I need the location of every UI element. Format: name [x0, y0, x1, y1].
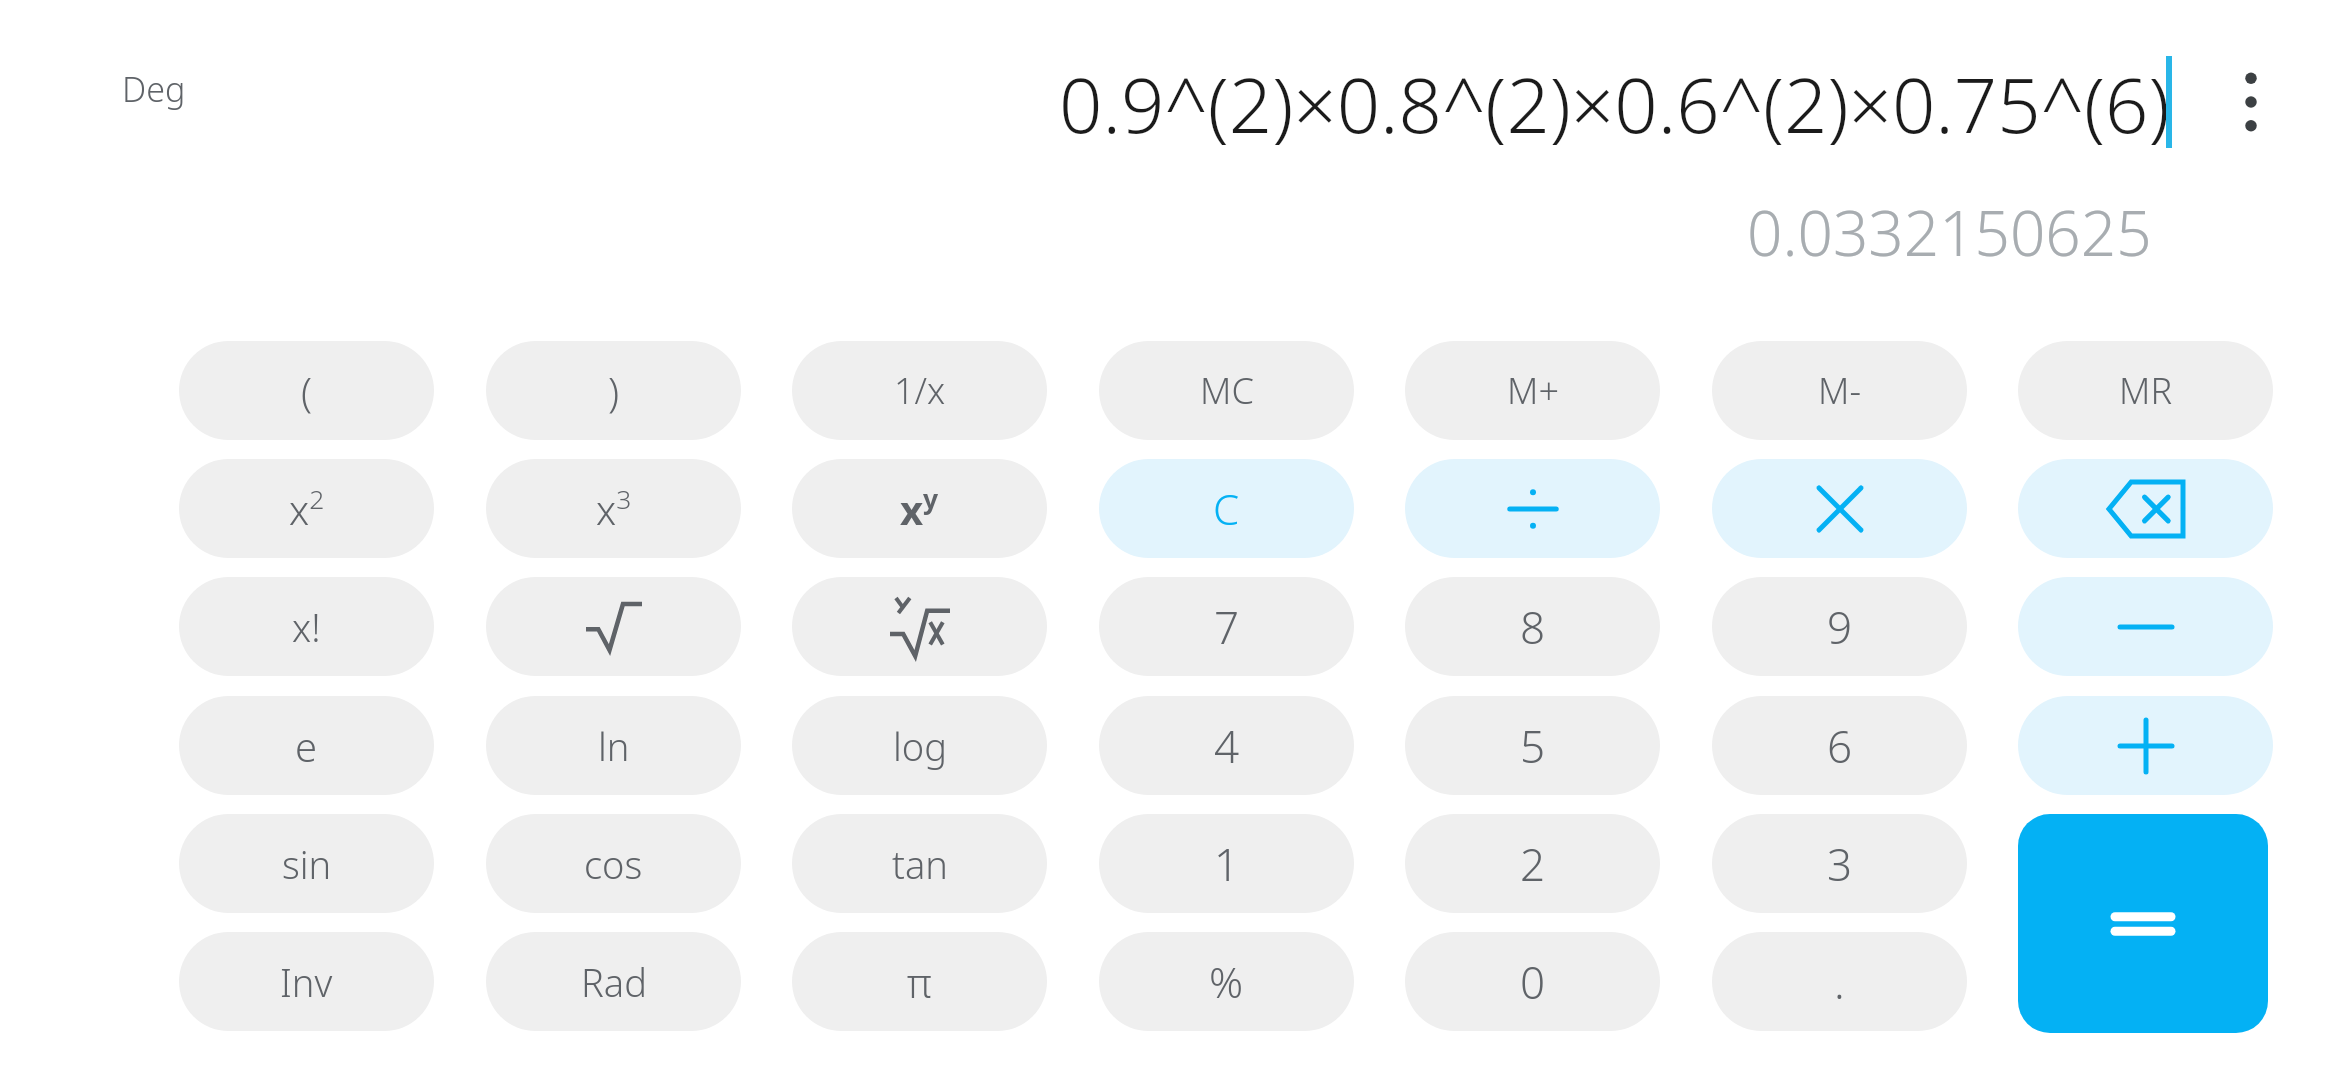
staticText: M+ — [1507, 366, 1559, 415]
button[interactable]: Rad — [486, 932, 741, 1031]
button[interactable]: ( — [179, 341, 434, 440]
staticText: 1 — [1214, 834, 1240, 894]
button[interactable]: Multiply — [1712, 459, 1967, 558]
staticText: x3 — [596, 481, 632, 536]
button[interactable]: y-th root of x — [792, 577, 1047, 676]
staticText: 6 — [1827, 716, 1853, 776]
button[interactable]: sin — [179, 814, 434, 913]
staticText: . — [1834, 952, 1845, 1012]
staticText: cos — [584, 838, 643, 890]
button[interactable]: 1/x — [792, 341, 1047, 440]
button[interactable]: ln — [486, 696, 741, 795]
button[interactable]: x3 — [486, 459, 741, 558]
button[interactable]: Minus — [2018, 577, 2273, 676]
staticText: e — [295, 719, 318, 773]
button[interactable]: xy — [792, 459, 1047, 558]
button[interactable]: 7 — [1099, 577, 1354, 676]
button[interactable]: 2 — [1405, 814, 1660, 913]
button[interactable]: 5 — [1405, 696, 1660, 795]
staticText: 4 — [1214, 716, 1240, 776]
button[interactable]: ) — [486, 341, 741, 440]
staticText: 0.9^(2)×0.8^(2)×0.6^(2)×0.75^(6) — [1059, 52, 2170, 152]
staticText: log — [893, 720, 947, 772]
button[interactable]: C — [1099, 459, 1354, 558]
staticText: 9 — [1827, 597, 1853, 657]
staticText: MR — [2119, 366, 2172, 415]
staticText: 0 — [1520, 952, 1546, 1012]
staticText: x2 — [289, 481, 325, 536]
button[interactable]: Equals — [2018, 814, 2268, 1033]
button[interactable]: Inv — [179, 932, 434, 1031]
staticText: 7 — [1214, 597, 1240, 657]
staticText: 8 — [1520, 597, 1546, 657]
staticText: 0.0332150625 — [1747, 190, 2152, 270]
button[interactable]: Deg — [122, 66, 186, 112]
staticText: 1/x — [894, 366, 946, 415]
staticText: ( — [301, 364, 313, 418]
button[interactable]: MR — [2018, 341, 2273, 440]
button[interactable]: Plus — [2018, 696, 2273, 795]
button[interactable]: More options — [2216, 52, 2286, 152]
staticText: xy — [900, 481, 939, 536]
staticText: 3 — [1827, 834, 1853, 894]
button[interactable]: tan — [792, 814, 1047, 913]
button[interactable]: x2 — [179, 459, 434, 558]
staticText: tan — [892, 838, 948, 890]
button[interactable]: Delete — [2018, 459, 2273, 558]
button[interactable]: x! — [179, 577, 434, 676]
staticText: Rad — [581, 956, 647, 1008]
button[interactable]: MC — [1099, 341, 1354, 440]
button[interactable]: . — [1712, 932, 1967, 1031]
staticText: π — [907, 955, 932, 1009]
button[interactable]: Divide — [1405, 459, 1660, 558]
staticText: Deg — [122, 66, 186, 112]
button[interactable]: log — [792, 696, 1047, 795]
staticText: ) — [608, 364, 620, 418]
button[interactable]: 0 — [1405, 932, 1660, 1031]
button[interactable]: π — [792, 932, 1047, 1031]
staticText: 5 — [1520, 716, 1546, 776]
button[interactable]: 6 — [1712, 696, 1967, 795]
staticText: MC — [1200, 366, 1254, 415]
button[interactable]: M- — [1712, 341, 1967, 440]
button[interactable]: cos — [486, 814, 741, 913]
staticText: 2 — [1520, 834, 1546, 894]
button[interactable]: 4 — [1099, 696, 1354, 795]
staticText: M- — [1818, 366, 1861, 415]
button[interactable]: 1 — [1099, 814, 1354, 913]
staticText: ln — [598, 720, 630, 772]
button[interactable]: M+ — [1405, 341, 1660, 440]
staticText: sin — [282, 838, 332, 890]
button[interactable]: 3 — [1712, 814, 1967, 913]
button[interactable]: 8 — [1405, 577, 1660, 676]
button[interactable]: 9 — [1712, 577, 1967, 676]
staticText: % — [1209, 953, 1244, 1010]
staticText: C — [1213, 480, 1240, 537]
staticText: Inv — [280, 956, 333, 1008]
button[interactable]: % — [1099, 932, 1354, 1031]
button[interactable]: e — [179, 696, 434, 795]
button[interactable]: Square root — [486, 577, 741, 676]
staticText: x! — [292, 601, 321, 653]
